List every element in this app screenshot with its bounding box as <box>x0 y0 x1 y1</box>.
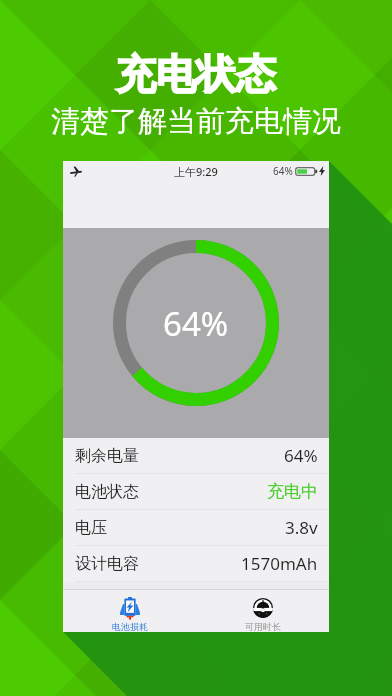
staticText: 电池损耗 <box>112 621 148 632</box>
staticText: 64% <box>273 164 293 178</box>
button[interactable]: 可用时长 <box>196 590 329 632</box>
button[interactable]: 电池状态 <box>63 474 329 510</box>
staticText: 充电中 <box>267 481 318 502</box>
other: Airplane mode <box>70 166 82 177</box>
staticText: 64% <box>284 444 318 467</box>
button[interactable]: 电池损耗 <box>63 590 196 632</box>
staticText: 64% <box>163 301 229 346</box>
button[interactable]: 剩余电量 <box>63 438 329 474</box>
staticText: 3.8v <box>285 516 318 539</box>
staticText: 剩余电量 <box>75 446 139 466</box>
button[interactable]: 电压 <box>63 510 329 546</box>
staticText: 1570mAh <box>241 552 318 575</box>
staticText: 上午9:29 <box>174 164 218 179</box>
button[interactable]: 设计电容 <box>63 546 329 582</box>
staticText: 可用时长 <box>245 621 281 632</box>
staticText: 电压 <box>75 518 107 538</box>
staticText: 电池状态 <box>75 482 139 502</box>
staticText: 充电状态 <box>116 49 276 99</box>
staticText: 清楚了解当前充电情况 <box>51 103 341 140</box>
staticText: 设计电容 <box>75 554 139 574</box>
